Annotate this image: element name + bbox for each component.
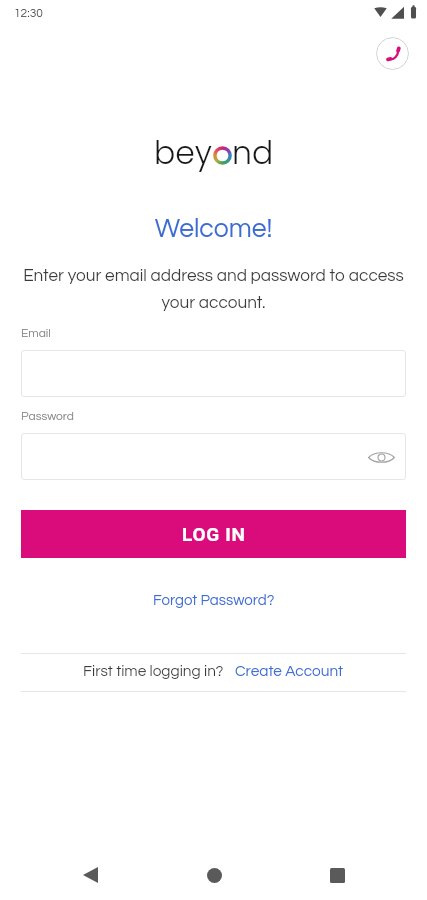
staticText: Enter your email address and password to… [22,267,405,312]
staticText: Password [21,410,74,422]
staticText: LOG IN [182,523,246,545]
button[interactable]: Call support [376,37,409,70]
button[interactable]: Recents [313,851,361,899]
staticText: Email [21,327,51,339]
button[interactable]: Home [190,851,238,899]
staticText: 12:30 [14,7,43,19]
button[interactable]: Show password [366,442,396,472]
button[interactable]: Back [66,851,114,899]
staticText: Welcome! [0,215,427,242]
button[interactable] [21,350,406,397]
staticText: bey [154,131,213,175]
button[interactable]: LOG IN [21,510,406,558]
staticText: nd [232,131,274,175]
button[interactable]: Create Account [235,663,344,679]
button[interactable]: Show password [21,433,406,480]
staticText: First time logging in? [83,663,224,679]
button[interactable]: Forgot Password? [145,591,283,610]
